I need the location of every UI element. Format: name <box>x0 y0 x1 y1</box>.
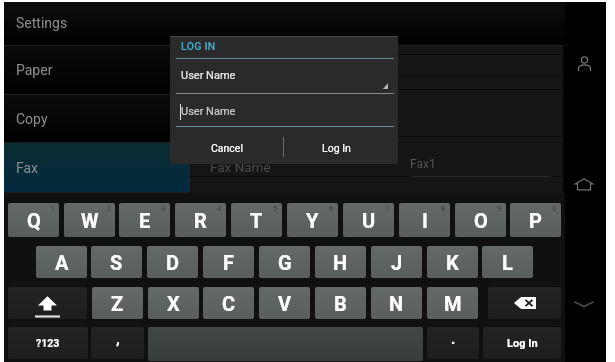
staticText: 9 <box>497 204 502 213</box>
button[interactable]: A <box>36 246 87 278</box>
staticText: G <box>278 251 292 274</box>
staticText: I <box>422 209 428 232</box>
staticText: W <box>81 209 99 232</box>
staticText: Log In <box>507 337 538 350</box>
staticText: B <box>334 292 347 315</box>
staticText: S <box>110 251 123 274</box>
button[interactable]: M <box>427 287 478 319</box>
staticText: 6 <box>329 204 334 213</box>
button[interactable]: H <box>315 246 366 278</box>
button[interactable]: Copy <box>4 95 190 142</box>
button[interactable]: K <box>427 246 478 278</box>
staticText: Copy <box>16 111 48 127</box>
button[interactable]: Paper <box>4 46 190 94</box>
button[interactable]: Cancel <box>173 134 280 162</box>
staticText: C <box>222 292 236 315</box>
button[interactable]: V <box>259 287 310 319</box>
button[interactable]: Z <box>92 287 143 319</box>
button[interactable]: N <box>371 287 422 319</box>
button[interactable]: E <box>119 203 170 237</box>
staticText: ?123 <box>36 337 60 349</box>
staticText: User Name <box>181 69 236 82</box>
staticText: H <box>333 251 348 274</box>
staticText: R <box>194 209 207 232</box>
button[interactable]: P <box>510 203 561 237</box>
staticText: Z <box>111 292 124 315</box>
staticText: 3 <box>161 204 166 213</box>
button[interactable]: B <box>315 287 366 319</box>
button[interactable]: Fax <box>4 143 190 192</box>
button[interactable]: Backspace <box>488 287 561 319</box>
button[interactable]: X <box>148 287 199 319</box>
button[interactable]: , <box>91 327 144 359</box>
staticText: Fax Name <box>210 159 271 175</box>
staticText: Q <box>27 209 41 232</box>
staticText: 8 <box>441 204 446 213</box>
staticText: V <box>278 292 292 315</box>
button[interactable]: O <box>455 203 506 237</box>
staticText: A <box>55 251 69 274</box>
staticText: 5 <box>273 204 278 213</box>
staticText: 1 <box>50 204 55 213</box>
button[interactable]: T <box>231 203 282 237</box>
staticText: 7 <box>385 204 390 213</box>
button[interactable]: W <box>64 203 115 237</box>
button[interactable]: Account <box>570 49 598 77</box>
button[interactable]: . <box>427 327 479 359</box>
button[interactable]: F <box>203 246 254 278</box>
staticText: Settings <box>16 15 68 31</box>
staticText: T <box>250 209 263 232</box>
staticText: F <box>223 251 234 274</box>
staticText: N <box>389 292 404 315</box>
button[interactable]: Home <box>570 170 598 198</box>
button[interactable]: Y <box>287 203 338 237</box>
staticText: L <box>502 251 513 274</box>
staticText: Fax1 <box>410 157 436 171</box>
other: Shift <box>8 287 87 319</box>
staticText: M <box>444 292 462 315</box>
button[interactable]: Settings <box>4 2 190 45</box>
staticText: Cancel <box>211 142 243 154</box>
staticText: LOG IN <box>181 40 216 52</box>
staticText: Fax <box>16 160 39 176</box>
button[interactable]: Log In <box>483 327 561 359</box>
button[interactable]: J <box>371 246 422 278</box>
button[interactable]: S <box>91 246 142 278</box>
staticText: E <box>139 209 151 232</box>
staticText: 0 <box>552 204 557 213</box>
button[interactable]: G <box>259 246 310 278</box>
staticText: J <box>391 251 403 274</box>
staticText: K <box>446 251 459 274</box>
button[interactable]: L <box>482 246 533 278</box>
staticText: P <box>529 209 542 232</box>
staticText: User Name <box>181 105 236 118</box>
other: Backspace <box>514 297 536 309</box>
staticText: Y <box>306 209 319 232</box>
button[interactable]: Shift <box>8 287 87 319</box>
staticText: Paper <box>16 62 53 78</box>
staticText: 2 <box>106 204 111 213</box>
button[interactable]: I <box>399 203 450 237</box>
button[interactable]: D <box>147 246 198 278</box>
button[interactable]: Log In <box>283 134 390 162</box>
staticText: O <box>474 209 488 232</box>
button[interactable]: C <box>203 287 254 319</box>
staticText: Settings <box>16 16 68 32</box>
button[interactable]: Q <box>8 203 59 237</box>
staticText: 4 <box>217 204 222 213</box>
staticText: D <box>166 251 179 274</box>
button[interactable]: R <box>175 203 226 237</box>
button[interactable]: U <box>343 203 394 237</box>
staticText: U <box>362 209 376 232</box>
staticText: Log In <box>322 142 351 154</box>
staticText: . <box>451 330 456 348</box>
staticText: , <box>116 330 120 348</box>
button[interactable]: ?123 <box>8 327 88 359</box>
button[interactable]: Hide keyboard <box>570 290 598 318</box>
staticText: X <box>167 292 180 315</box>
